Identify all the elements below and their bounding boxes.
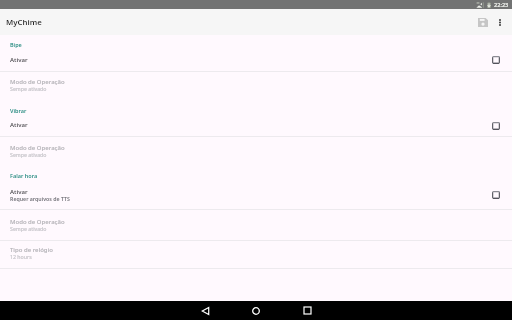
staticText: 22:23 bbox=[494, 1, 509, 9]
staticText: 12 hours bbox=[10, 253, 32, 260]
button[interactable]: Save bbox=[473, 12, 493, 32]
staticText: Ativar bbox=[10, 188, 28, 196]
staticText: Ativar bbox=[10, 56, 28, 64]
button[interactable]: Modo de Operação bbox=[0, 210, 512, 240]
button[interactable]: More options bbox=[490, 12, 510, 32]
staticText: Requer arquivos de TTS bbox=[10, 195, 70, 202]
staticText: Bipe bbox=[10, 41, 22, 48]
staticText: Tipo de relógio bbox=[10, 246, 53, 254]
button[interactable]: Ativar bbox=[0, 50, 512, 71]
button[interactable]: Bipe bbox=[0, 36, 512, 50]
staticText: Modo de Operação bbox=[10, 144, 65, 152]
button[interactable]: Vibrar bbox=[0, 99, 512, 116]
button[interactable]: Modo de Operação bbox=[0, 72, 512, 100]
button[interactable]: Ativar bbox=[0, 116, 512, 136]
staticText: Modo de Operação bbox=[10, 218, 65, 226]
button[interactable]: Ativar bbox=[0, 182, 512, 209]
button[interactable]: Home bbox=[239, 301, 273, 320]
staticText: MyChime bbox=[6, 17, 42, 28]
button[interactable]: Back bbox=[188, 301, 222, 320]
staticText: Modo de Operação bbox=[10, 78, 65, 86]
staticText: Ativar bbox=[10, 121, 28, 129]
button[interactable]: Recents bbox=[290, 301, 324, 320]
staticText: Vibrar bbox=[10, 107, 27, 114]
staticText: Sempe ativado bbox=[10, 225, 47, 232]
staticText: Falar hora bbox=[10, 172, 38, 179]
button[interactable]: Tipo de relógio bbox=[0, 240, 512, 268]
button[interactable]: Modo de Operação bbox=[0, 137, 512, 164]
staticText: Sempe ativado bbox=[10, 151, 47, 158]
button[interactable]: Falar hora bbox=[0, 164, 512, 182]
staticText: Sempe ativado bbox=[10, 85, 47, 92]
